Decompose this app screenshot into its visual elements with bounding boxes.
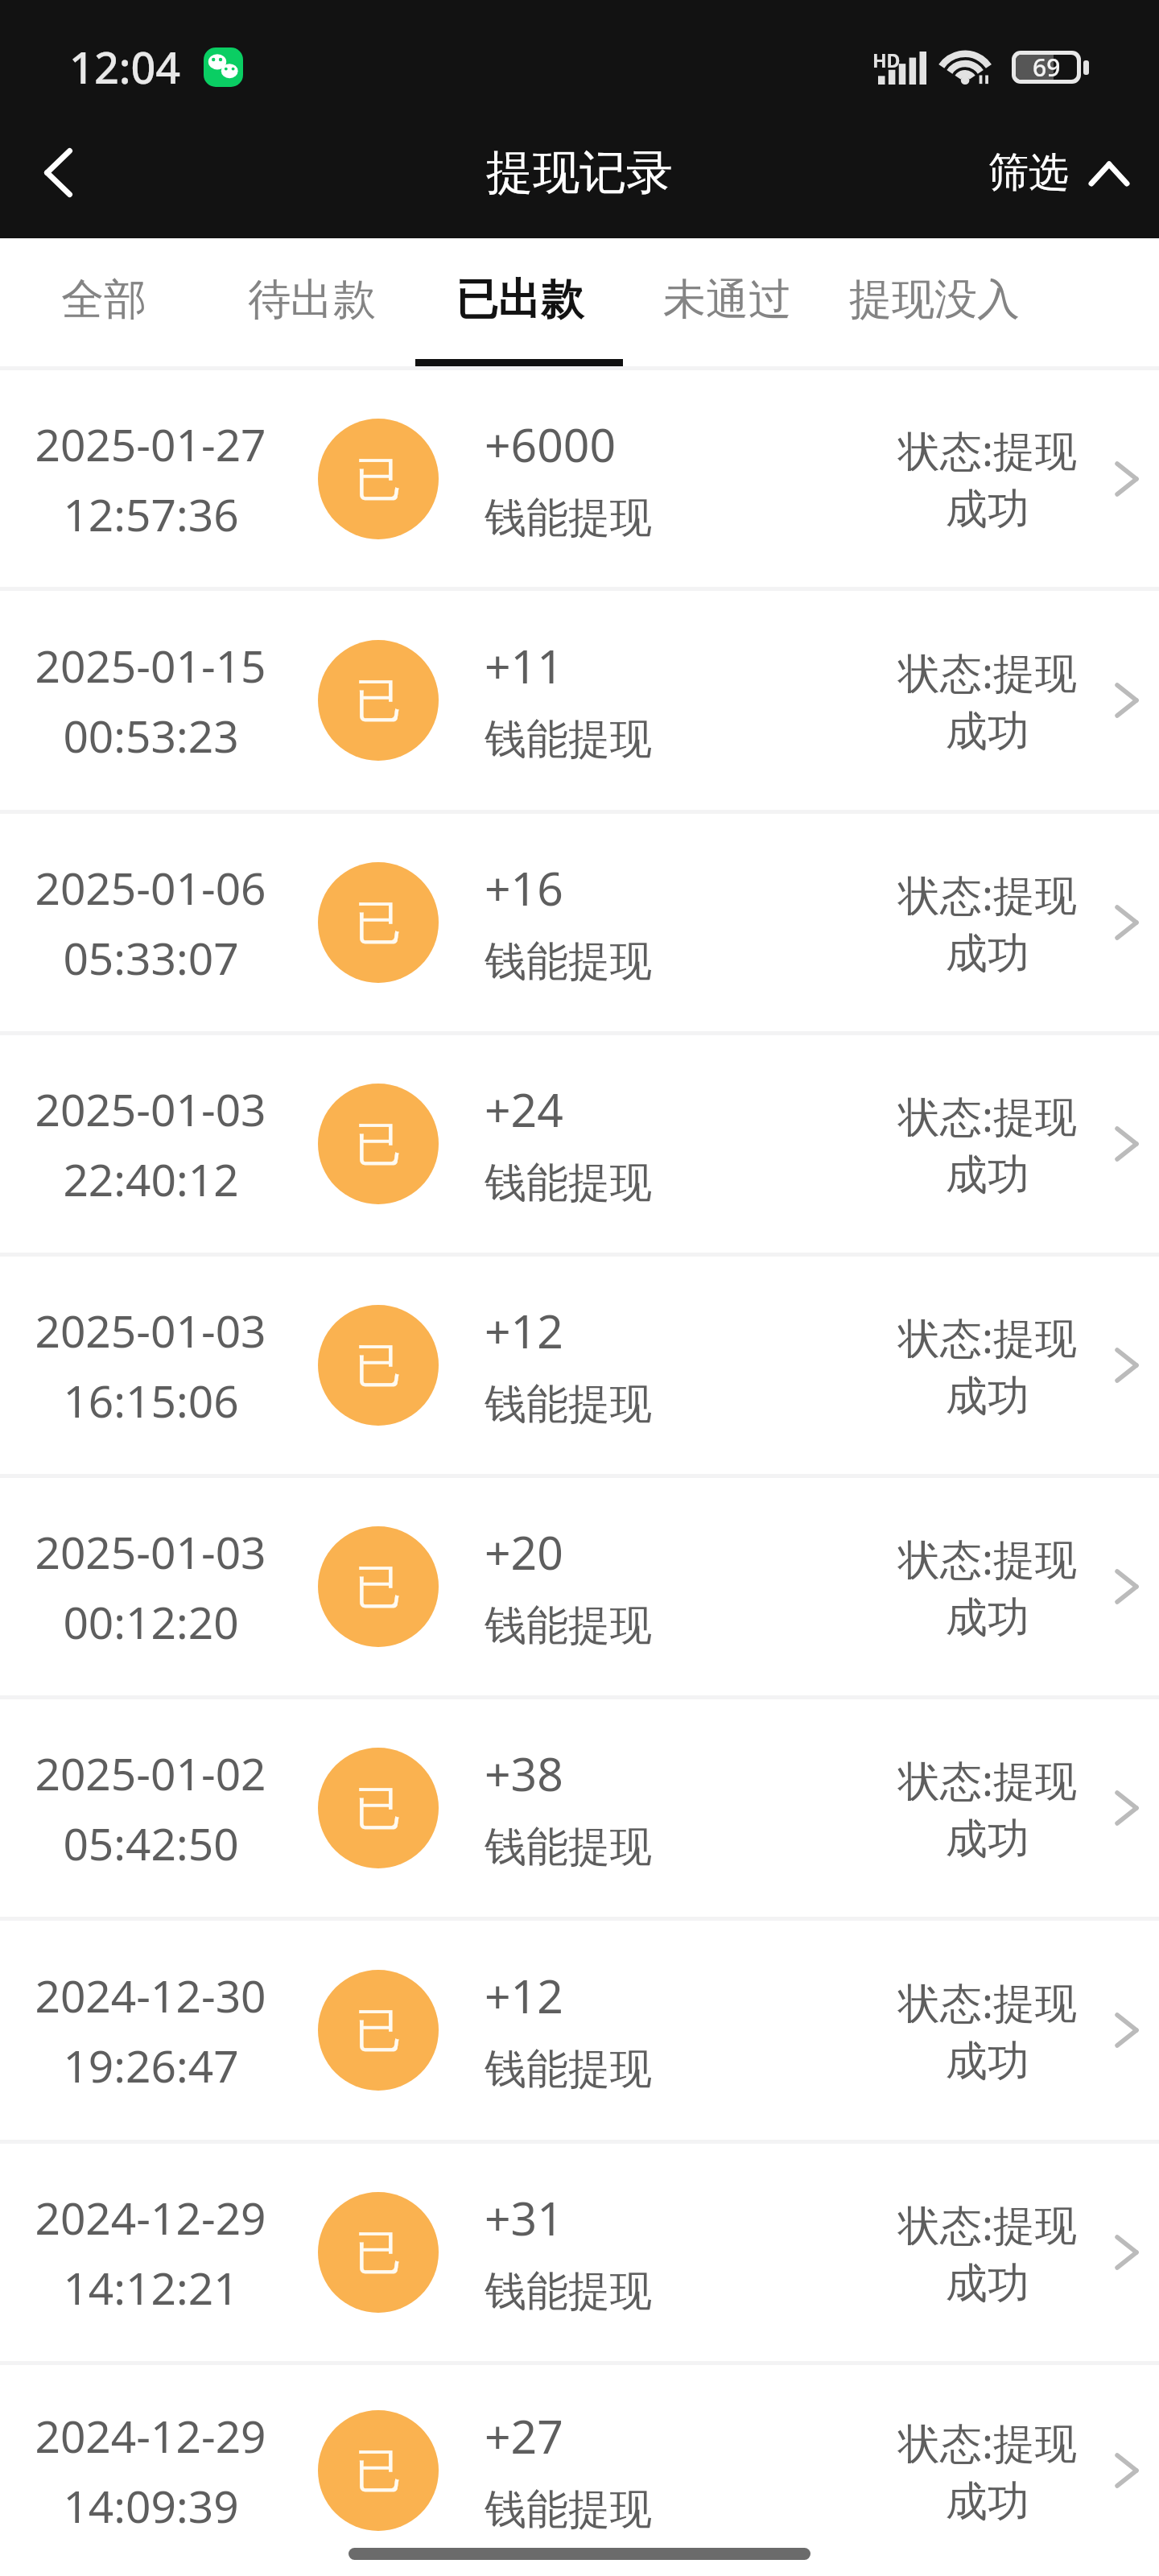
staticText: 钱能提现 bbox=[485, 935, 652, 989]
staticText: 2025-01-06 bbox=[35, 857, 266, 918]
staticText: 2025-01-27 bbox=[35, 414, 266, 474]
other: 查看详情 bbox=[1096, 1100, 1159, 1188]
staticText: 14:12:21 bbox=[63, 2257, 239, 2318]
staticText: 待出款 bbox=[248, 273, 376, 327]
staticText: HD bbox=[872, 47, 901, 72]
staticText: 2024-12-30 bbox=[35, 1965, 266, 2025]
staticText: 16:15:06 bbox=[63, 1370, 239, 1430]
button[interactable]: 2025-01-03 bbox=[0, 1035, 1159, 1253]
button[interactable]: 已出款 bbox=[415, 238, 623, 366]
staticText: 成功 bbox=[946, 1813, 1029, 1866]
staticText: 未通过 bbox=[663, 273, 791, 327]
button[interactable]: 2025-01-06 bbox=[0, 814, 1159, 1031]
staticText: 成功 bbox=[946, 2035, 1029, 2088]
staticText: 钱能提现 bbox=[485, 1378, 652, 1431]
button[interactable]: 2025-01-02 bbox=[0, 1699, 1159, 1917]
button[interactable]: 2024-12-29 bbox=[0, 2144, 1159, 2361]
button[interactable]: 2025-01-27 bbox=[0, 370, 1159, 587]
staticText: 2025-01-02 bbox=[35, 1743, 266, 1803]
button[interactable]: 2025-01-15 bbox=[0, 591, 1159, 810]
staticText: +20 bbox=[485, 1521, 563, 1583]
staticText: +12 bbox=[485, 1299, 563, 1362]
other: 查看详情 bbox=[1096, 1764, 1159, 1852]
staticText: 钱能提现 bbox=[485, 492, 652, 545]
staticText: 成功 bbox=[946, 483, 1029, 536]
staticText: 状态:提现 bbox=[898, 1751, 1077, 1808]
staticText: 2025-01-03 bbox=[35, 1300, 266, 1360]
staticText: 已 bbox=[355, 1336, 402, 1395]
other: 查看详情 bbox=[1096, 656, 1159, 745]
staticText: 已 bbox=[355, 1115, 402, 1174]
staticText: 已 bbox=[355, 2001, 402, 2060]
button[interactable]: 筛选 bbox=[964, 131, 1159, 214]
staticText: 14:09:39 bbox=[63, 2475, 239, 2536]
staticText: 已出款 bbox=[456, 273, 584, 327]
staticText: 状态:提现 bbox=[898, 2413, 1077, 2471]
button[interactable]: 待出款 bbox=[208, 238, 415, 366]
staticText: 成功 bbox=[946, 705, 1029, 758]
staticText: 2024-12-29 bbox=[35, 2187, 266, 2248]
button[interactable]: 全部 bbox=[0, 238, 208, 366]
staticText: 12:57:36 bbox=[63, 484, 239, 544]
staticText: 状态:提现 bbox=[898, 421, 1077, 478]
button[interactable]: 2024-12-29 bbox=[0, 2365, 1159, 2576]
staticText: 05:33:07 bbox=[63, 927, 239, 988]
staticText: 2024-12-29 bbox=[35, 2405, 266, 2466]
button[interactable]: Back bbox=[0, 120, 117, 225]
button[interactable]: 未通过 bbox=[623, 238, 831, 366]
button[interactable]: 提现没入 bbox=[831, 238, 1038, 366]
staticText: 状态:提现 bbox=[898, 2195, 1077, 2252]
staticText: 状态:提现 bbox=[898, 1087, 1077, 1144]
staticText: 成功 bbox=[946, 1370, 1029, 1423]
staticText: 成功 bbox=[946, 1149, 1029, 1202]
staticText: 12:04 bbox=[69, 37, 181, 97]
staticText: 筛选 bbox=[988, 147, 1069, 198]
staticText: +12 bbox=[485, 1964, 563, 2027]
staticText: 已 bbox=[355, 2223, 402, 2282]
staticText: 成功 bbox=[946, 2475, 1029, 2529]
other: 查看详情 bbox=[1096, 2426, 1159, 2515]
other: 查看详情 bbox=[1096, 435, 1159, 523]
staticText: 钱能提现 bbox=[485, 2265, 652, 2318]
other: 查看详情 bbox=[1096, 1321, 1159, 1410]
staticText: 已 bbox=[355, 450, 402, 509]
button[interactable]: 2025-01-03 bbox=[0, 1478, 1159, 1695]
other: 查看详情 bbox=[1096, 2208, 1159, 2297]
button[interactable]: 2024-12-30 bbox=[0, 1921, 1159, 2140]
staticText: 22:40:12 bbox=[63, 1149, 239, 1209]
staticText: 状态:提现 bbox=[898, 1529, 1077, 1587]
staticText: +38 bbox=[485, 1742, 563, 1805]
staticText: 状态:提现 bbox=[898, 865, 1077, 923]
staticText: +31 bbox=[485, 2186, 563, 2249]
staticText: 05:42:50 bbox=[63, 1813, 239, 1873]
staticText: 提现记录 bbox=[486, 143, 673, 202]
button[interactable]: 2025-01-03 bbox=[0, 1257, 1159, 1474]
staticText: 状态:提现 bbox=[898, 643, 1077, 700]
staticText: 00:53:23 bbox=[63, 705, 239, 766]
staticText: 已 bbox=[355, 1779, 402, 1838]
staticText: 钱能提现 bbox=[485, 2043, 652, 2096]
staticText: 19:26:47 bbox=[63, 2035, 239, 2095]
staticText: 2025-01-03 bbox=[35, 1521, 266, 1582]
staticText: 成功 bbox=[946, 1591, 1029, 1645]
staticText: 状态:提现 bbox=[898, 1308, 1077, 1365]
staticText: 已 bbox=[355, 894, 402, 952]
staticText: 全部 bbox=[61, 273, 146, 327]
staticText: 00:12:20 bbox=[63, 1591, 239, 1652]
other: 查看详情 bbox=[1096, 1542, 1159, 1631]
staticText: 状态:提现 bbox=[898, 1973, 1077, 2030]
staticText: +16 bbox=[485, 857, 563, 919]
other: 查看详情 bbox=[1096, 1986, 1159, 2074]
staticText: 钱能提现 bbox=[485, 1821, 652, 1874]
staticText: 钱能提现 bbox=[485, 713, 652, 766]
staticText: 钱能提现 bbox=[485, 1600, 652, 1653]
staticText: 提现没入 bbox=[849, 273, 1020, 327]
staticText: 69 bbox=[1033, 51, 1061, 84]
staticText: +6000 bbox=[485, 413, 617, 476]
staticText: +27 bbox=[485, 2405, 563, 2467]
staticText: 钱能提现 bbox=[485, 1157, 652, 1210]
staticText: 已 bbox=[355, 671, 402, 730]
staticText: 成功 bbox=[946, 2257, 1029, 2310]
staticText: +24 bbox=[485, 1078, 563, 1141]
staticText: 钱能提现 bbox=[485, 2483, 652, 2537]
